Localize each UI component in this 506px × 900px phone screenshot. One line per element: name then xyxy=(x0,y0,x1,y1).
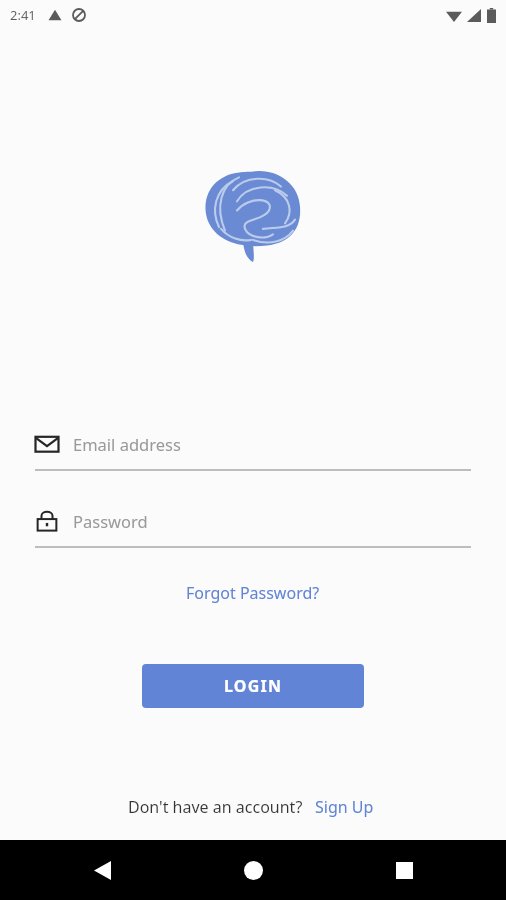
staticText: Email address xyxy=(73,433,181,455)
button[interactable]: Sign Up xyxy=(311,794,378,820)
staticText: Don't have an account? xyxy=(128,796,303,818)
button[interactable]: Forgot Password? xyxy=(178,578,328,608)
staticText: Password xyxy=(73,510,148,532)
staticText: LOGIN xyxy=(224,675,283,697)
button[interactable]: Home xyxy=(233,850,273,890)
button[interactable]: LOGIN xyxy=(142,664,364,708)
button[interactable]: Email address xyxy=(35,426,471,471)
button[interactable]: Password xyxy=(35,503,471,548)
staticText: Sign Up xyxy=(315,796,374,818)
staticText: 2:41 xyxy=(10,6,36,24)
staticText: Forgot Password? xyxy=(186,582,320,604)
button[interactable]: Back xyxy=(82,850,122,890)
button[interactable]: Recent apps xyxy=(384,850,424,890)
